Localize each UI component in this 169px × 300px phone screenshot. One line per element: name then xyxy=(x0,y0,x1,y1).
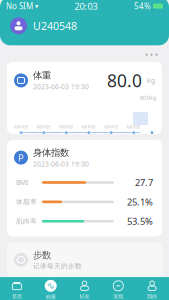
staticText: 步数 xyxy=(33,249,51,261)
staticText: ∿ xyxy=(47,280,55,291)
staticText: ▾ xyxy=(33,2,38,10)
button[interactable]: Weigh in xyxy=(34,277,68,300)
staticText: 好友 xyxy=(79,293,89,300)
staticText: kg xyxy=(147,76,155,85)
staticText: 体脂率 xyxy=(16,198,37,206)
button[interactable]: 体重 xyxy=(7,62,162,134)
staticText: P xyxy=(18,151,24,164)
staticText: 6月01日 xyxy=(104,124,118,129)
button[interactable]: Friends xyxy=(68,277,101,300)
staticText: 6月01日 xyxy=(127,124,141,129)
button[interactable]: Profile xyxy=(135,277,169,300)
staticText: 称重 xyxy=(46,294,56,300)
button[interactable]: More options xyxy=(141,47,162,62)
staticText: • • • xyxy=(145,49,158,60)
button[interactable]: 步数 xyxy=(7,242,162,277)
staticText: BMI xyxy=(16,178,28,187)
button[interactable]: Home xyxy=(0,277,34,300)
staticText: 80.0kg xyxy=(140,94,156,101)
staticText: 肌肉率 xyxy=(16,217,37,225)
staticText: 体重 xyxy=(33,70,51,81)
staticText: 2023-06-03 19:30 xyxy=(33,82,89,91)
staticText: 27.7 xyxy=(135,176,153,189)
staticText: 80.0 xyxy=(107,69,142,92)
staticText: 53.5% xyxy=(127,215,153,227)
staticText: 20:03 xyxy=(74,0,97,12)
staticText: 身体指数 xyxy=(33,147,69,158)
staticText: No SIM xyxy=(6,1,33,11)
button[interactable]: P xyxy=(7,140,162,236)
staticText: 发现 xyxy=(113,293,123,300)
staticText: 54% xyxy=(134,1,151,11)
button[interactable]: Discover xyxy=(101,277,135,300)
staticText: 6月01日 xyxy=(37,124,51,129)
staticText: 记录每天的步数 xyxy=(33,262,82,270)
staticText: 首页 xyxy=(12,293,22,300)
staticText: 2023-06-03 19:30 xyxy=(33,159,89,168)
staticText: 我的 xyxy=(147,293,157,300)
staticText: U240548 xyxy=(33,19,77,33)
staticText: 6月01日 xyxy=(82,124,96,129)
staticText: 6月01日 xyxy=(14,124,28,129)
staticText: 25.1% xyxy=(127,196,153,208)
staticText: 6月01日 xyxy=(59,124,73,129)
